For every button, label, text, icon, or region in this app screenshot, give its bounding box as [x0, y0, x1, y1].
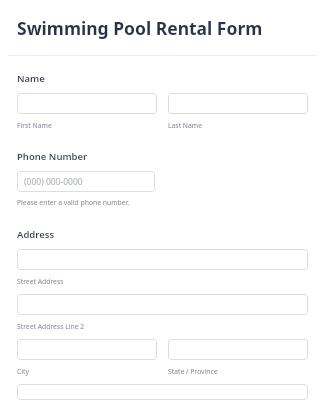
button[interactable]: (000) 000-0000 [17, 171, 155, 192]
staticText: Name [17, 72, 45, 85]
staticText: First Name [17, 121, 52, 130]
staticText: Address [17, 228, 55, 241]
staticText: Please enter a valid phone number. [17, 198, 130, 207]
button[interactable] [168, 93, 308, 114]
button[interactable] [17, 294, 308, 315]
staticText: City [17, 367, 29, 376]
staticText: Street Address Line 2 [17, 322, 85, 331]
staticText: (000) 000-0000 [24, 176, 83, 188]
button[interactable] [168, 339, 308, 360]
staticText: Street Address [17, 277, 64, 286]
staticText: Last Name [168, 121, 203, 130]
button[interactable] [17, 93, 157, 114]
staticText: State / Province [168, 367, 218, 376]
button[interactable] [17, 339, 157, 360]
staticText: Swimming Pool Rental Form [17, 16, 263, 40]
button[interactable] [17, 384, 308, 400]
staticText: Phone Number [17, 150, 88, 163]
button[interactable] [17, 249, 308, 270]
